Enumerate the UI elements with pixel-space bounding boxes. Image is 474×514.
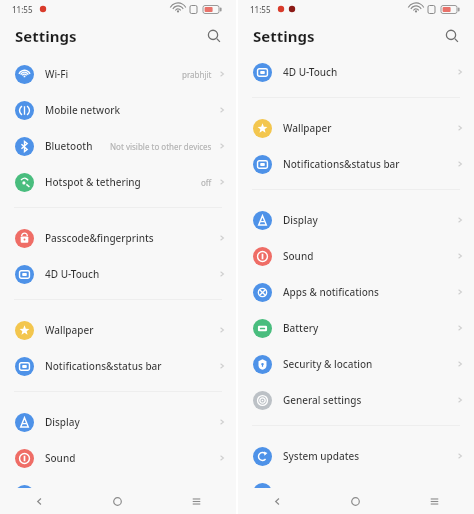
staticText: Sound (283, 249, 314, 263)
button[interactable]: Search (201, 23, 227, 49)
button[interactable]: Sound (238, 238, 474, 274)
staticText: Apps & notifications (45, 487, 141, 501)
staticText: Bluetooth (45, 139, 93, 153)
staticText: Battery (283, 321, 319, 335)
staticText: Display (283, 213, 318, 227)
staticText: Notifications&status bar (45, 359, 162, 373)
staticText: Wallpaper (283, 121, 332, 135)
staticText: Passcode&fingerprints (45, 231, 154, 245)
button[interactable]: Wi-Fi (0, 56, 236, 92)
button[interactable]: Passcode&fingerprints (0, 220, 236, 256)
button[interactable]: 4D U-Touch (0, 256, 236, 292)
button[interactable]: Recents (395, 488, 474, 514)
button[interactable]: Display (0, 404, 236, 440)
staticText: Mobile network (45, 103, 121, 117)
staticText: Sound (45, 451, 76, 465)
staticText: 4D U-Touch (283, 65, 338, 79)
staticText: General settings (283, 393, 362, 407)
staticText: Security & location (283, 357, 373, 371)
button[interactable]: Notifications&status bar (0, 348, 236, 384)
staticText: off (201, 177, 212, 188)
button[interactable]: Security & location (238, 346, 474, 382)
button[interactable]: Apps & notifications (238, 274, 474, 310)
staticText: Settings (15, 26, 77, 46)
button[interactable]: 4D U-Touch (238, 54, 474, 90)
staticText: Display (45, 415, 80, 429)
button[interactable]: Battery (238, 310, 474, 346)
button[interactable]: Back (238, 488, 316, 514)
button[interactable]: Sound (0, 440, 236, 476)
staticText: Not visible to other devices (110, 141, 212, 152)
button[interactable]: System (238, 474, 474, 510)
staticText: Hotspot & tethering (45, 175, 141, 189)
staticText: Wallpaper (45, 323, 94, 337)
button[interactable]: Home (78, 488, 157, 514)
button[interactable]: Wallpaper (0, 312, 236, 348)
staticText: 4D U-Touch (45, 267, 100, 281)
button[interactable]: Display (238, 202, 474, 238)
staticText: Settings (253, 26, 315, 46)
staticText: Notifications&status bar (283, 157, 400, 171)
button[interactable]: Notifications&status bar (238, 146, 474, 182)
staticText: prabhjit (182, 69, 212, 80)
button[interactable]: Apps & notifications (0, 476, 236, 512)
button[interactable]: Search (439, 23, 465, 49)
staticText: Wi-Fi (45, 67, 69, 81)
button[interactable]: Home (316, 488, 395, 514)
button[interactable]: Hotspot & tethering (0, 164, 236, 200)
button[interactable]: Recents (157, 488, 236, 514)
button[interactable]: System updates (238, 438, 474, 474)
button[interactable]: General settings (238, 382, 474, 418)
staticText: System updates (283, 449, 360, 463)
button[interactable]: Mobile network (0, 92, 236, 128)
button[interactable]: Wallpaper (238, 110, 474, 146)
button[interactable]: Bluetooth (0, 128, 236, 164)
button[interactable]: Back (0, 488, 78, 514)
staticText: 11:55 (250, 4, 271, 15)
staticText: 11:55 (12, 4, 33, 15)
staticText: Apps & notifications (283, 285, 379, 299)
